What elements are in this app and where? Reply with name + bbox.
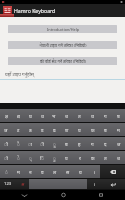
staticText: ष bbox=[117, 113, 120, 119]
button[interactable]: े bbox=[12, 151, 24, 164]
button[interactable]: ध bbox=[36, 109, 48, 122]
staticText: च bbox=[65, 113, 68, 119]
staticText: ी bbox=[40, 141, 44, 147]
button[interactable]: ण bbox=[60, 123, 73, 136]
button[interactable]: ञ bbox=[0, 123, 12, 136]
staticText: द bbox=[104, 141, 107, 147]
button[interactable]: । bbox=[87, 165, 100, 178]
button[interactable]: द bbox=[99, 137, 112, 150]
button[interactable]: ी bbox=[36, 137, 48, 150]
staticText: ौ bbox=[4, 141, 8, 147]
staticText: ब bbox=[104, 127, 107, 133]
button[interactable]: व bbox=[36, 165, 48, 178]
button[interactable]: Backspace bbox=[100, 165, 125, 178]
staticText: ज bbox=[117, 141, 121, 147]
staticText: ग bbox=[104, 113, 107, 119]
button[interactable]: ड bbox=[36, 123, 48, 136]
button[interactable]: ल bbox=[48, 165, 61, 178]
button[interactable]: ौ bbox=[0, 137, 12, 150]
button[interactable]: ै bbox=[12, 137, 24, 150]
button[interactable]: घ bbox=[24, 109, 36, 122]
staticText: क bbox=[91, 155, 95, 161]
staticText: 123 bbox=[4, 181, 12, 187]
staticText: ण bbox=[65, 127, 69, 133]
button[interactable]: ब bbox=[99, 123, 112, 136]
button[interactable]: ष bbox=[112, 109, 125, 122]
button[interactable]: ग bbox=[99, 109, 112, 122]
staticText: न bbox=[29, 169, 32, 175]
button[interactable]: ् bbox=[24, 151, 36, 164]
staticText: । bbox=[93, 181, 95, 187]
staticText: ह bbox=[78, 141, 81, 147]
staticText: ि bbox=[40, 155, 44, 161]
staticText: ब bbox=[65, 141, 68, 147]
button[interactable]: Home bbox=[48, 190, 78, 200]
button[interactable]: ग bbox=[86, 137, 99, 150]
button[interactable]: ो bbox=[0, 151, 12, 164]
button[interactable]: ब bbox=[60, 137, 73, 150]
button[interactable]: म bbox=[12, 165, 24, 178]
staticText: । bbox=[93, 169, 95, 175]
button[interactable]: 123 bbox=[0, 179, 16, 189]
staticText: ञ bbox=[4, 127, 8, 133]
button[interactable]: की बोर्ड सेट गर्ने तरिका (भिडियो) bbox=[8, 57, 117, 65]
button[interactable]: म bbox=[112, 123, 125, 136]
button[interactable]: ज bbox=[112, 137, 125, 150]
button[interactable]: Recents bbox=[86, 190, 116, 200]
button[interactable]: प bbox=[60, 151, 73, 164]
staticText: घ bbox=[29, 113, 32, 119]
button[interactable]: ू bbox=[48, 137, 60, 150]
staticText: ध bbox=[41, 113, 44, 119]
staticText: ट bbox=[17, 127, 20, 133]
button[interactable]: य bbox=[74, 165, 87, 178]
button[interactable]: र bbox=[73, 151, 86, 164]
button[interactable]: द्य bbox=[12, 109, 24, 122]
button[interactable]: भ bbox=[48, 109, 60, 122]
button[interactable]: ह bbox=[73, 137, 86, 150]
button[interactable]: नेपाली टाइप गर्ने तरिका (भिडियो) bbox=[8, 41, 117, 49]
button[interactable]: App icon bbox=[3, 6, 12, 15]
button[interactable]: स bbox=[61, 165, 74, 178]
button[interactable]: । bbox=[87, 179, 100, 189]
button[interactable]: ु bbox=[48, 151, 60, 164]
button[interactable] bbox=[29, 179, 87, 189]
staticText: ं bbox=[5, 169, 8, 175]
staticText: ा bbox=[28, 141, 32, 147]
staticText: भ bbox=[52, 113, 56, 119]
staticText: ठ bbox=[29, 127, 32, 133]
staticText: ु bbox=[53, 155, 56, 161]
button[interactable]: अ bbox=[16, 179, 29, 189]
button[interactable]: त bbox=[73, 109, 86, 122]
staticText: व bbox=[41, 169, 44, 175]
button[interactable]: थ bbox=[86, 109, 99, 122]
button[interactable]: प bbox=[73, 123, 86, 136]
button[interactable]: च bbox=[60, 109, 73, 122]
button[interactable]: ा bbox=[24, 137, 36, 150]
button[interactable]: च bbox=[112, 151, 125, 164]
staticText: ड bbox=[41, 127, 44, 133]
button[interactable]: Introduction/Help bbox=[8, 25, 117, 33]
staticText: ् bbox=[29, 155, 32, 161]
button[interactable]: फ bbox=[86, 123, 99, 136]
staticText: ू bbox=[53, 141, 56, 147]
button[interactable]: Back bbox=[9, 190, 39, 200]
staticText: अ bbox=[21, 181, 25, 187]
button[interactable]: Enter bbox=[100, 179, 125, 189]
button[interactable]: ढ bbox=[48, 123, 60, 136]
button[interactable]: ज्ञ bbox=[0, 109, 12, 122]
button[interactable]: ट bbox=[12, 123, 24, 136]
button[interactable]: क bbox=[86, 151, 99, 164]
button[interactable]: न bbox=[24, 165, 36, 178]
staticText: नेपाली टाइप गर्ने तरिका (भिडियो) bbox=[39, 43, 87, 48]
staticText: च bbox=[117, 155, 120, 161]
button[interactable]: त bbox=[99, 151, 112, 164]
button[interactable]: ं bbox=[0, 165, 12, 178]
staticText: ढ bbox=[53, 127, 56, 133]
staticText: म bbox=[117, 127, 120, 133]
staticText: की बोर्ड सेट गर्ने तरिका (भिडियो) bbox=[40, 59, 86, 64]
staticText: त bbox=[78, 113, 81, 119]
button[interactable]: ठ bbox=[24, 123, 36, 136]
staticText: ै bbox=[17, 141, 20, 147]
button[interactable]: ि bbox=[36, 151, 48, 164]
staticText: Introduction/Help bbox=[47, 27, 79, 32]
